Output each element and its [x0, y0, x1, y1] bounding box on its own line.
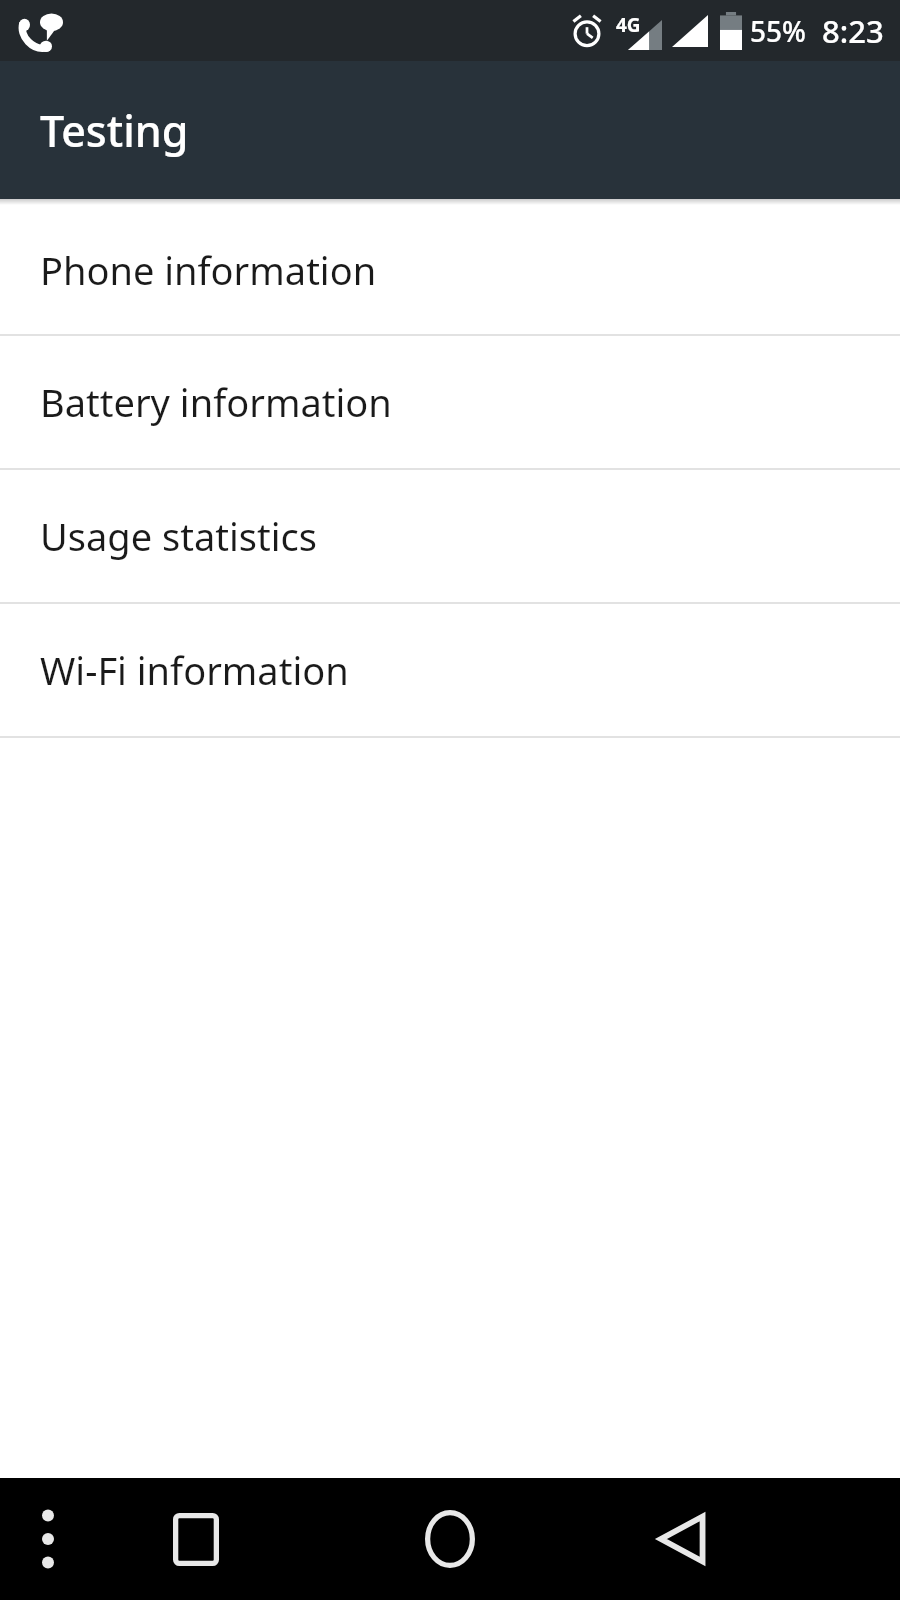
staticText: 8:23 — [822, 10, 884, 52]
button[interactable]: Wi-Fi information — [0, 604, 900, 736]
staticText: Battery information — [40, 376, 392, 428]
staticText: 55% — [750, 12, 806, 50]
button[interactable]: Back — [630, 1478, 730, 1600]
button[interactable]: Phone information — [0, 205, 900, 334]
button[interactable]: Home — [400, 1478, 500, 1600]
button[interactable]: Battery information — [0, 336, 900, 468]
button[interactable]: Recent apps — [151, 1478, 241, 1600]
staticText: Phone information — [40, 244, 377, 296]
staticText: Testing — [40, 101, 189, 160]
staticText: 4G — [616, 12, 641, 38]
button[interactable]: Usage statistics — [0, 470, 900, 602]
staticText: Wi-Fi information — [40, 644, 349, 696]
button[interactable]: More options — [10, 1478, 86, 1600]
staticText: Usage statistics — [40, 510, 317, 562]
